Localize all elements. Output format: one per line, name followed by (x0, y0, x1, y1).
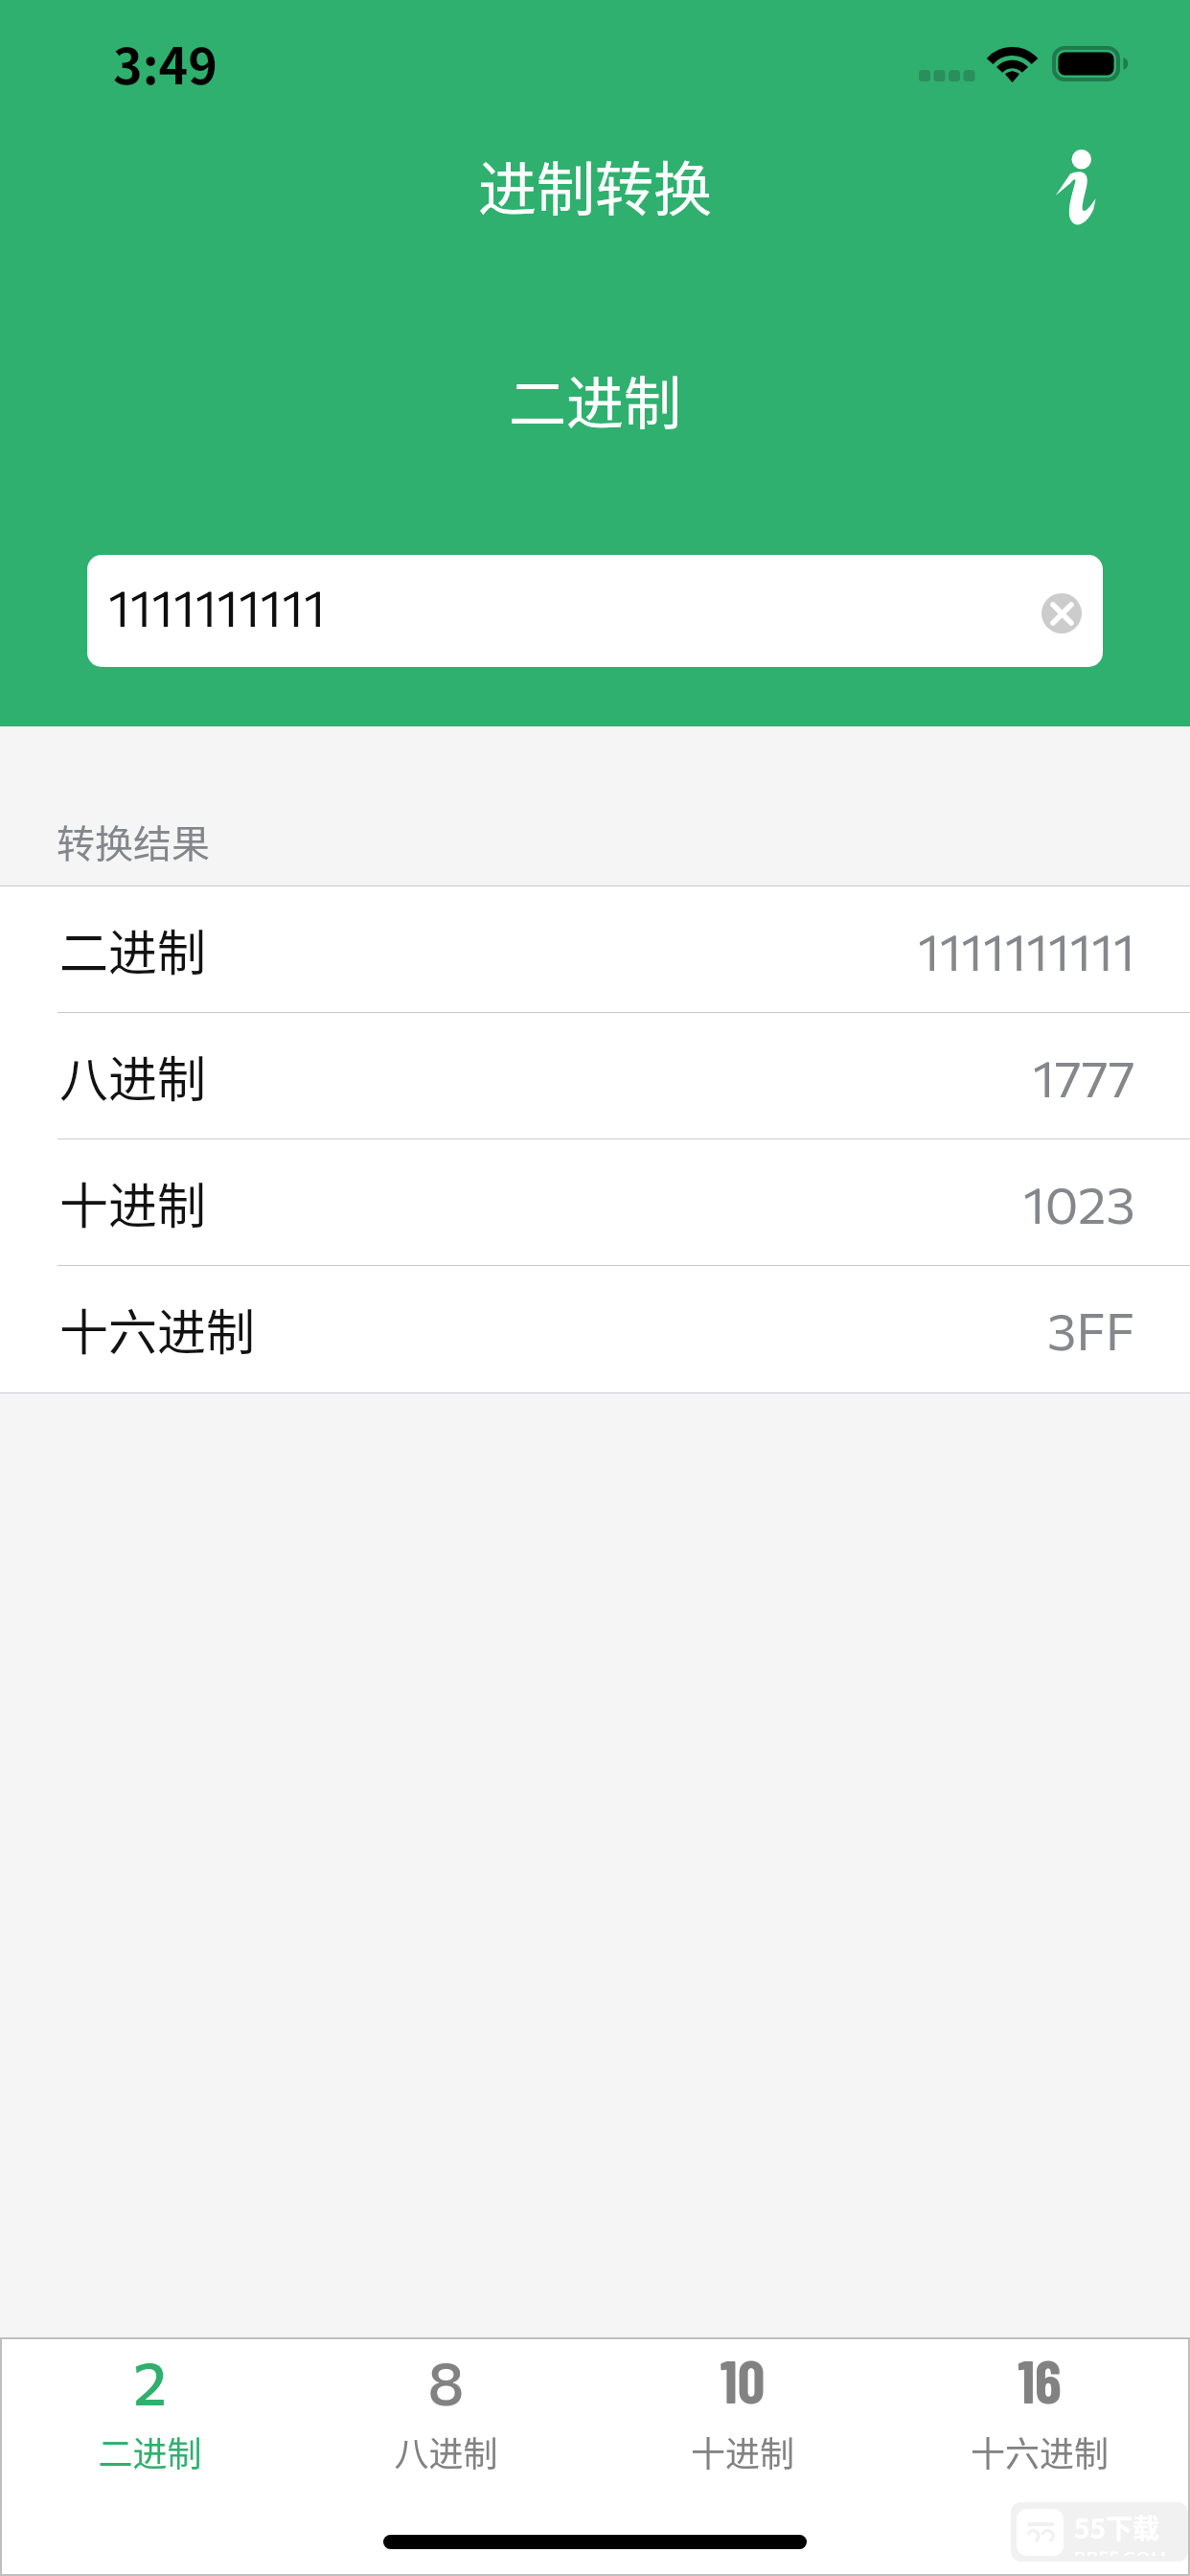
button[interactable]: Info (1027, 140, 1119, 232)
staticText: 1111111111 (108, 575, 326, 637)
staticText: 55下载 (1074, 2508, 1160, 2547)
staticText: 十六进制 (891, 2426, 1188, 2476)
button[interactable]: 1111111111 (87, 555, 1103, 667)
button[interactable]: 十进制 (0, 1139, 1190, 1266)
staticText: 八进制 (298, 2426, 594, 2476)
staticText: 十六进制 (59, 1294, 256, 1365)
staticText: 1777 (1033, 1046, 1135, 1108)
staticText: 二进制 (2, 2426, 298, 2476)
button[interactable]: 2 (2, 2339, 298, 2531)
staticText: 2 (2, 2345, 298, 2418)
staticText: 转换结果 (57, 814, 210, 869)
staticText: 3:49 (113, 27, 217, 99)
staticText: 十进制 (59, 1167, 207, 1238)
staticText: 进制转换 (0, 143, 1190, 227)
staticText: 1023 (1023, 1172, 1135, 1234)
staticText: 3FF (1047, 1299, 1135, 1361)
button[interactable]: 10 (594, 2339, 891, 2531)
staticText: 二进制 (0, 357, 1190, 441)
button[interactable]: 8 (298, 2339, 594, 2531)
staticText: 10 (594, 2343, 891, 2416)
button[interactable]: 八进制 (0, 1013, 1190, 1139)
button[interactable]: 16 (891, 2339, 1188, 2531)
staticText: 十进制 (594, 2426, 891, 2476)
button[interactable]: 十六进制 (0, 1266, 1190, 1392)
staticText: 二进制 (59, 914, 207, 985)
button[interactable]: Clear text (1041, 593, 1082, 633)
staticText: 1111111111 (918, 919, 1135, 981)
staticText: 16 (891, 2343, 1188, 2416)
button[interactable]: 二进制 (0, 886, 1190, 1013)
staticText: 八进制 (59, 1041, 207, 1112)
staticText: RR55.COM (1074, 2547, 1168, 2556)
staticText: 8 (298, 2345, 594, 2418)
